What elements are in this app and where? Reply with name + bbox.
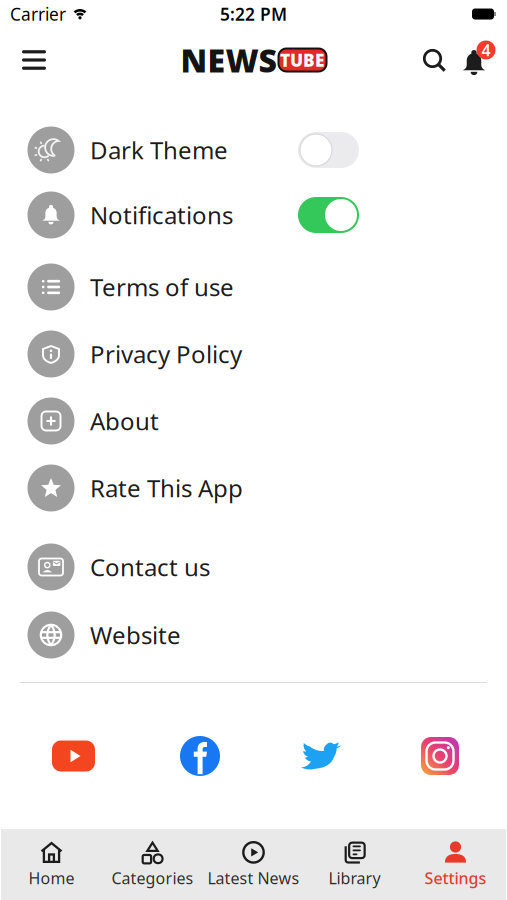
button[interactable]: Website xyxy=(27,611,507,659)
staticText: Rate This App xyxy=(90,472,243,504)
staticText: Categories xyxy=(111,867,193,889)
staticText: Settings xyxy=(424,867,486,889)
button[interactable]: Rate This App xyxy=(27,464,507,512)
staticText: Website xyxy=(90,619,181,651)
button[interactable]: Notifications: On xyxy=(298,197,359,233)
staticText: Dark Theme xyxy=(90,134,228,166)
button[interactable]: Terms of use xyxy=(27,263,507,311)
button[interactable]: Twitter xyxy=(300,739,342,773)
button[interactable]: Instagram xyxy=(421,737,459,775)
staticText: Latest News xyxy=(207,867,299,889)
staticText: 4 xyxy=(481,39,490,61)
button[interactable]: Library xyxy=(304,833,405,895)
staticText: 5:22 PM xyxy=(220,2,287,25)
button[interactable]: About xyxy=(27,397,507,445)
staticText: Terms of use xyxy=(90,271,234,303)
staticText: Notifications xyxy=(90,199,233,231)
button[interactable]: Notifications xyxy=(27,191,507,239)
staticText: Contact us xyxy=(90,551,210,583)
staticText: Home xyxy=(28,867,74,889)
button[interactable]: Home xyxy=(1,833,102,895)
staticText: About xyxy=(90,405,159,437)
staticText: Library xyxy=(328,867,380,889)
staticText: NEWS xyxy=(180,39,276,81)
button[interactable]: Dark Theme: Off xyxy=(298,132,359,168)
button[interactable]: Latest News xyxy=(203,833,304,895)
button[interactable]: Search xyxy=(415,40,453,80)
button[interactable]: YouTube xyxy=(52,740,95,771)
button[interactable]: Dark Theme xyxy=(27,126,507,174)
button[interactable]: Settings xyxy=(405,833,506,895)
staticText: TUBE xyxy=(280,48,325,71)
button[interactable]: Privacy Policy xyxy=(27,330,507,378)
button[interactable]: Facebook xyxy=(180,736,220,776)
button[interactable]: Contact us xyxy=(27,543,507,591)
button[interactable]: Notifications xyxy=(453,40,499,80)
button[interactable]: Menu xyxy=(14,40,54,80)
staticText: Carrier xyxy=(10,2,66,25)
button[interactable]: Categories xyxy=(102,833,203,895)
staticText: Privacy Policy xyxy=(90,338,242,370)
